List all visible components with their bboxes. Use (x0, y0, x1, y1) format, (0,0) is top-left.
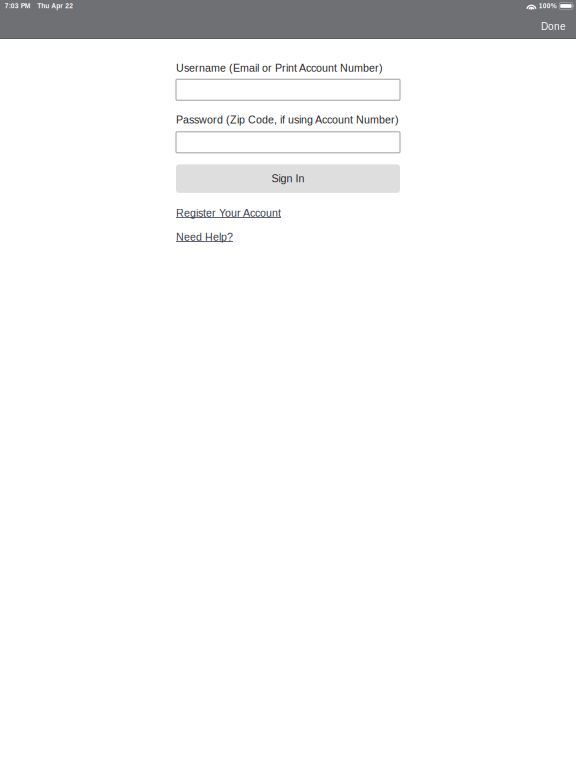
button[interactable]: Done (533, 14, 574, 37)
staticText: Sign In (271, 173, 304, 184)
staticText: Thu Apr 22 (37, 2, 73, 10)
staticText: 7:03 PM (5, 2, 31, 10)
button[interactable]: Password (Zip Code, if using Account Num… (176, 132, 400, 153)
button[interactable]: Username (Email or Print Account Number) (176, 79, 400, 100)
staticText: Need Help? (176, 231, 233, 243)
staticText: Username (Email or Print Account Number) (176, 62, 383, 74)
staticText: Done (541, 21, 566, 32)
button[interactable]: Register Your Account (176, 207, 281, 219)
staticText: 100% (539, 2, 557, 10)
staticText: Password (Zip Code, if using Account Num… (176, 114, 399, 126)
button[interactable]: Need Help? (176, 231, 233, 243)
button[interactable]: Sign In (176, 164, 400, 193)
staticText: Register Your Account (176, 207, 281, 219)
